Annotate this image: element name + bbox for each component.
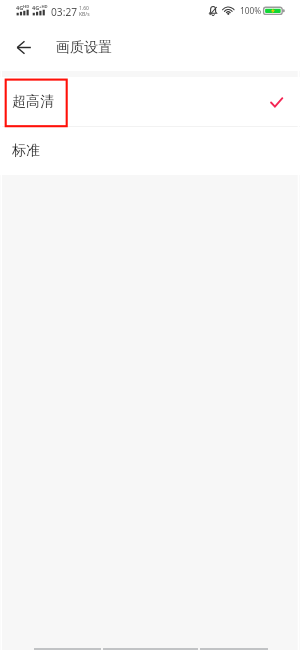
button[interactable]: 超高清 [0,77,300,126]
button[interactable]: Back [2,25,46,69]
staticText: 标准 [12,142,40,160]
staticText: 4G [16,4,24,12]
staticText: KB/s [79,11,90,18]
staticText: 03:27 [51,5,78,19]
staticText: 超高清 [12,93,54,111]
staticText: 100% [240,5,262,16]
staticText: 4G [32,4,40,12]
staticText: 画质设置 [56,38,113,56]
button[interactable]: 标准 [0,127,300,175]
staticText: HD [23,4,30,10]
staticText: 1.60 [79,5,89,12]
staticText: +HD [39,4,48,10]
